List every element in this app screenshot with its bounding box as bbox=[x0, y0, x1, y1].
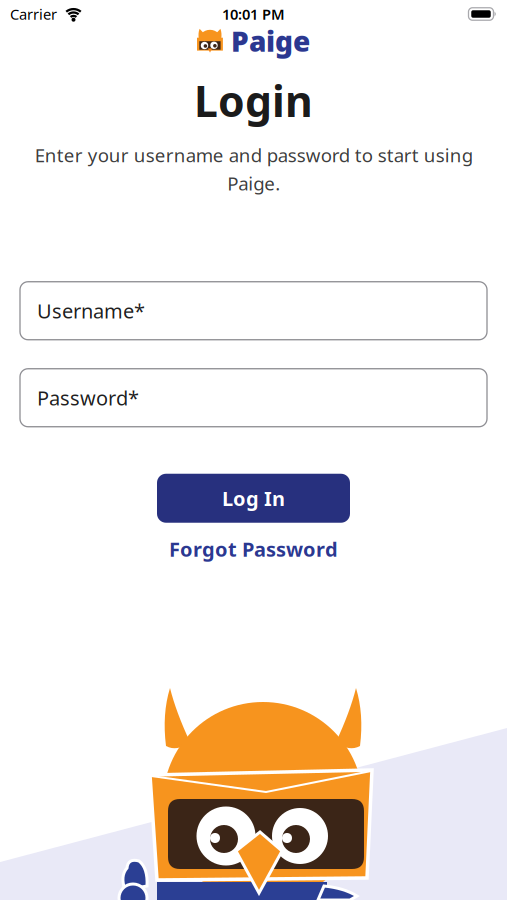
staticText: Forgot Password bbox=[169, 536, 338, 562]
button[interactable]: Password* bbox=[20, 369, 487, 427]
button[interactable]: Username* bbox=[20, 282, 487, 340]
staticText: Enter your username and password to star… bbox=[34, 143, 472, 196]
button[interactable]: Forgot Password bbox=[169, 536, 338, 562]
staticText: 10:01 PM bbox=[222, 4, 285, 24]
staticText: Log In bbox=[222, 485, 285, 512]
staticText: Carrier bbox=[10, 4, 57, 24]
button[interactable]: Log In bbox=[157, 474, 350, 523]
staticText: Username* bbox=[37, 297, 145, 324]
staticText: Password* bbox=[37, 384, 139, 411]
staticText: Paige bbox=[231, 22, 310, 60]
staticText: Login bbox=[194, 72, 313, 129]
